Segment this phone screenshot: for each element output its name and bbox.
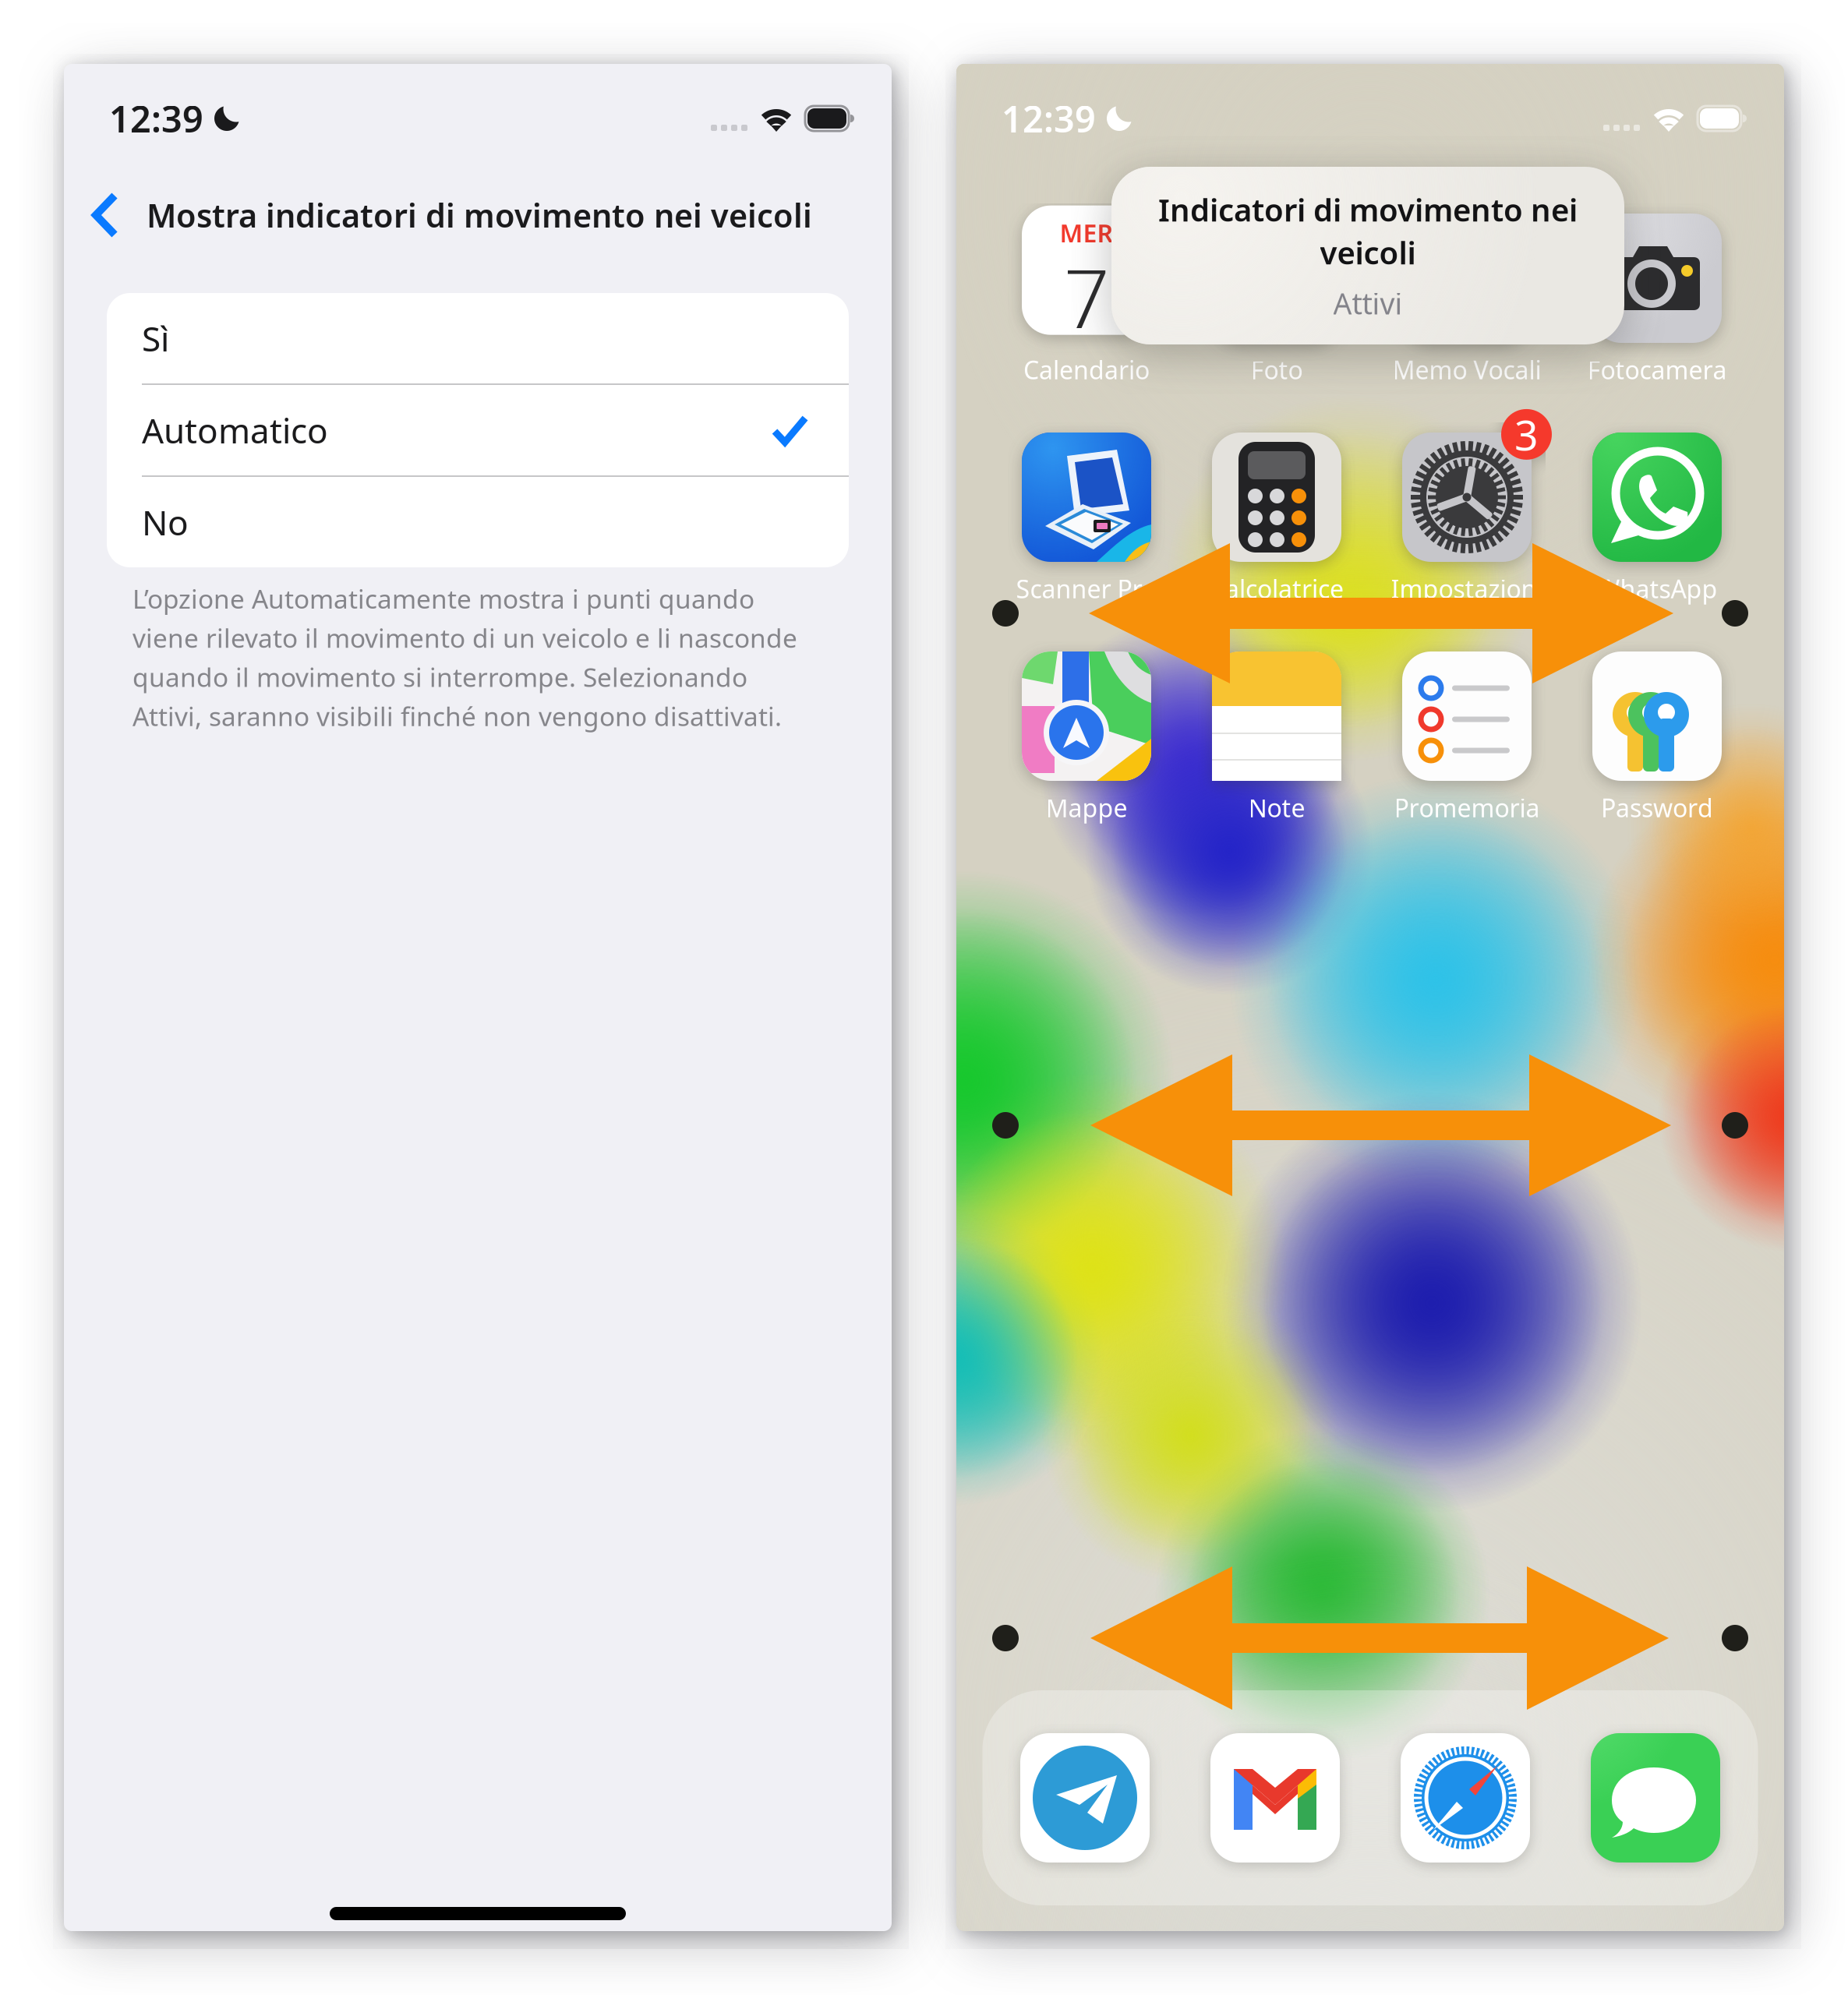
staticText: 12:39 <box>109 94 203 143</box>
staticText: viene rilevato il movimento di un veicol… <box>133 621 797 655</box>
staticText: Attivi, saranno visibili finché non veng… <box>133 699 782 733</box>
staticText: Mostra indicatori di movimento nei veico… <box>147 194 812 237</box>
staticText: Foto <box>1251 353 1303 386</box>
staticText: Scanner Pro <box>1016 572 1157 605</box>
button[interactable]: Sì <box>107 293 849 383</box>
staticText: Indicatori di movimento nei <box>1158 189 1578 230</box>
button[interactable]: Indietro <box>64 173 147 257</box>
staticText: Mappe <box>1046 791 1127 824</box>
button[interactable]: Promemoria <box>1372 651 1562 824</box>
staticText: 7 <box>1064 243 1110 351</box>
staticText: Fotocamera <box>1587 353 1727 386</box>
staticText: Impostazioni <box>1391 572 1543 605</box>
staticText: Note <box>1248 791 1305 824</box>
staticText: Memo Vocali <box>1392 353 1541 386</box>
button[interactable]: Foto <box>1182 214 1372 386</box>
staticText: Attivi <box>1333 284 1403 323</box>
button[interactable]: Note <box>1182 651 1372 824</box>
staticText: WhatsApp <box>1597 572 1717 605</box>
button[interactable]: Messaggi <box>1591 1733 1720 1863</box>
button[interactable]: Mappe <box>991 651 1182 824</box>
staticText: Sì <box>142 315 169 361</box>
staticText: Calendario <box>1023 353 1150 386</box>
staticText: quando il movimento si interrompe. Selez… <box>133 660 747 694</box>
button[interactable]: WhatsApp <box>1562 433 1752 605</box>
staticText: 12:39 <box>1002 94 1096 143</box>
staticText: No <box>142 499 189 545</box>
staticText: 3 <box>1514 407 1539 462</box>
button[interactable]: Scanner Pro <box>991 433 1182 605</box>
button[interactable]: Automatico <box>107 385 849 475</box>
button[interactable]: MER <box>991 214 1182 386</box>
button[interactable]: No <box>107 477 849 567</box>
button[interactable]: 3 <box>1372 433 1562 605</box>
button[interactable]: Telegram <box>1020 1733 1150 1863</box>
button[interactable]: Safari <box>1401 1733 1530 1863</box>
button[interactable]: Fotocamera <box>1562 214 1752 386</box>
button[interactable]: Calcolatrice <box>1182 433 1372 605</box>
staticText: Promemoria <box>1394 791 1540 824</box>
staticText: MER <box>1060 216 1113 250</box>
button[interactable]: Password <box>1562 651 1752 824</box>
button[interactable]: Gmail <box>1210 1733 1340 1863</box>
staticText: Password <box>1601 791 1713 824</box>
button[interactable]: Memo Vocali <box>1372 214 1562 386</box>
staticText: Automatico <box>142 407 328 453</box>
staticText: L’opzione Automaticamente mostra i punti… <box>133 581 754 616</box>
staticText: Calcolatrice <box>1210 572 1344 605</box>
staticText: veicoli <box>1320 232 1416 273</box>
